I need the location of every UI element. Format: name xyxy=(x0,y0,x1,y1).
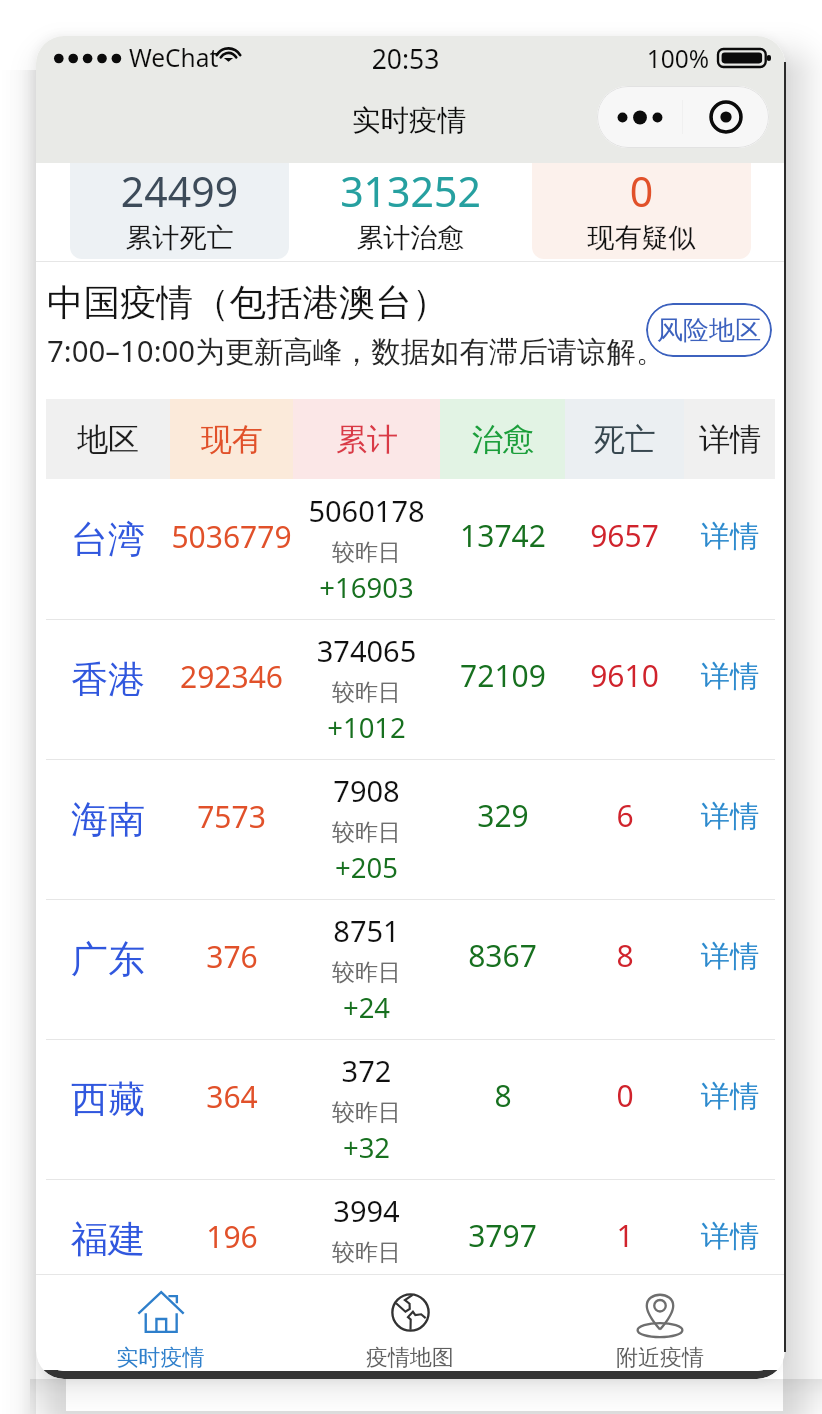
staticText: 7908 xyxy=(293,771,440,810)
staticText: 196 xyxy=(206,1216,258,1257)
staticText: 累计治愈 xyxy=(301,221,520,255)
staticText: 广东 xyxy=(71,936,145,983)
button[interactable]: 累计 xyxy=(293,399,440,479)
staticText: 详情 xyxy=(701,1218,759,1255)
staticText: 7573 xyxy=(197,796,266,837)
staticText: 累计 xyxy=(336,420,398,459)
staticText: 附近疫情 xyxy=(535,1344,785,1371)
staticText: 较昨日 xyxy=(293,958,440,987)
button[interactable]: 附近疫情 xyxy=(535,1275,785,1371)
staticText: 实时疫情 xyxy=(36,1344,285,1371)
staticText: +205 xyxy=(293,849,440,886)
staticText: 中国疫情（包括港澳台） xyxy=(47,280,449,326)
staticText: 3994 xyxy=(293,1191,440,1230)
staticText: +16903 xyxy=(293,569,440,606)
staticText: 0 xyxy=(532,163,751,219)
staticText: 详情 xyxy=(701,1078,759,1115)
staticText: 24499 xyxy=(70,163,289,219)
staticText: 详情 xyxy=(701,798,759,835)
staticText: 地区 xyxy=(77,420,139,459)
staticText: 100% xyxy=(640,42,716,75)
button[interactable]: 香港 xyxy=(36,619,785,759)
staticText: 0 xyxy=(616,1075,634,1116)
button[interactable]: 实时疫情 xyxy=(36,1275,285,1371)
button[interactable]: 广东 xyxy=(36,899,785,1039)
button[interactable]: 详情 xyxy=(684,399,775,479)
staticText: 72109 xyxy=(460,655,546,696)
staticText: 7:00–10:00为更新高峰，数据如有滞后请谅解。 xyxy=(47,331,666,371)
staticText: 死亡 xyxy=(594,420,656,459)
button[interactable]: 治愈 xyxy=(440,399,565,479)
button[interactable]: 西藏 xyxy=(36,1039,785,1179)
staticText: +1012 xyxy=(293,709,440,746)
staticText: 313252 xyxy=(301,163,520,219)
button[interactable]: 24499 xyxy=(70,163,289,259)
staticText: 8367 xyxy=(468,935,537,976)
staticText: 疫情地图 xyxy=(285,1344,535,1371)
staticText: 治愈 xyxy=(472,420,534,459)
button[interactable]: Close mini program xyxy=(683,86,769,148)
button[interactable]: 风险地区 xyxy=(646,303,772,357)
staticText: 香港 xyxy=(71,656,145,703)
button[interactable]: 海南 xyxy=(36,759,785,899)
staticText: 福建 xyxy=(71,1216,145,1263)
staticText: 详情 xyxy=(701,938,759,975)
button[interactable]: 0 xyxy=(532,163,751,259)
staticText: 风险地区 xyxy=(657,314,761,347)
staticText: 5036779 xyxy=(171,516,292,557)
staticText: 较昨日 xyxy=(293,678,440,707)
staticText: 329 xyxy=(477,795,529,836)
staticText: 3797 xyxy=(468,1215,537,1256)
staticText: 374065 xyxy=(293,631,440,670)
staticText: 9610 xyxy=(590,655,659,696)
staticText: 9657 xyxy=(590,515,659,556)
button[interactable]: 313252 xyxy=(301,163,520,259)
staticText: 现有疑似 xyxy=(532,221,751,255)
staticText: 较昨日 xyxy=(293,818,440,847)
staticText: 8 xyxy=(616,935,634,976)
staticText: 详情 xyxy=(701,518,759,555)
staticText: 8751 xyxy=(293,911,440,950)
button[interactable]: 台湾 xyxy=(36,479,785,619)
button[interactable]: 福建 xyxy=(36,1179,785,1319)
staticText: 6 xyxy=(616,795,634,836)
button[interactable]: 地区 xyxy=(46,399,170,479)
button[interactable]: 死亡 xyxy=(565,399,684,479)
staticText: 1 xyxy=(616,1215,634,1256)
staticText: 8 xyxy=(494,1075,512,1116)
button[interactable]: 疫情地图 xyxy=(285,1275,535,1371)
button[interactable]: 现有 xyxy=(170,399,293,479)
staticText: 海南 xyxy=(71,796,145,843)
staticText: 292346 xyxy=(180,656,283,697)
staticText: 20:53 xyxy=(368,41,443,77)
staticText: 详情 xyxy=(699,420,761,459)
staticText: 364 xyxy=(206,1076,258,1117)
staticText: 376 xyxy=(206,936,258,977)
staticText: 较昨日 xyxy=(293,538,440,567)
staticText: +32 xyxy=(293,1129,440,1166)
staticText: +24 xyxy=(293,989,440,1026)
staticText: 实时疫情 xyxy=(347,103,471,139)
staticText: 较昨日 xyxy=(293,1098,440,1127)
staticText: 较昨日 xyxy=(293,1238,440,1267)
staticText: 西藏 xyxy=(71,1076,145,1123)
staticText: WeChat xyxy=(129,41,219,74)
staticText: 13742 xyxy=(460,515,546,556)
staticText: 现有 xyxy=(201,420,263,459)
staticText: +9 xyxy=(293,1269,440,1306)
staticText: 372 xyxy=(293,1051,440,1090)
staticText: 详情 xyxy=(701,658,759,695)
staticText: 累计死亡 xyxy=(70,221,289,255)
staticText: 5060178 xyxy=(293,491,440,530)
button[interactable]: More options xyxy=(597,86,682,148)
staticText: 台湾 xyxy=(71,516,145,563)
